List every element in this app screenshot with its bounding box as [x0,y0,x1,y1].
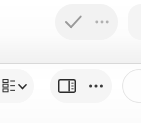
button[interactable]: Layout options [0,69,34,103]
button[interactable]: More tools [128,4,141,40]
button[interactable]: More options [80,70,112,102]
button[interactable]: Accept [57,6,89,38]
button[interactable]: More [122,69,141,103]
button[interactable]: Split view [51,70,83,102]
button[interactable]: More options [86,6,118,38]
